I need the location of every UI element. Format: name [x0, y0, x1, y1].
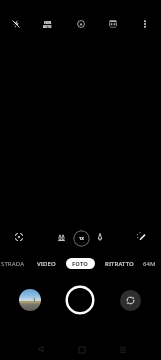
button[interactable]: Recents: [111, 338, 135, 360]
staticText: 1X: [79, 236, 84, 241]
button[interactable]: VIDEO: [33, 258, 59, 269]
button[interactable]: Flash off: [3, 11, 29, 37]
staticText: FOTO: [72, 260, 89, 268]
button[interactable]: Motion photo: [68, 11, 94, 37]
button[interactable]: RITRATTO: [103, 258, 135, 269]
button[interactable]: Home: [70, 338, 94, 360]
button[interactable]: Gallery: [19, 289, 41, 311]
button[interactable]: Filters: [129, 224, 153, 248]
staticText: HDR: [44, 20, 52, 25]
staticText: STRADA: [1, 260, 25, 268]
button[interactable]: Back: [29, 337, 53, 360]
button[interactable]: More settings: [132, 11, 158, 37]
button[interactable]: STRADA: [0, 258, 26, 269]
button[interactable]: 64M: [138, 258, 160, 269]
staticText: VIDEO: [37, 260, 56, 268]
button[interactable]: Switch camera: [120, 290, 141, 311]
button[interactable]: HDR: [33, 13, 61, 35]
button[interactable]: Shutter: [65, 285, 95, 315]
button[interactable]: FOTO: [66, 258, 95, 269]
button[interactable]: Beauty: [49, 225, 73, 249]
staticText: 64M: [143, 260, 156, 268]
staticText: AUTO: [43, 25, 52, 29]
button[interactable]: Focus: [7, 225, 31, 249]
staticText: RITRATTO: [105, 260, 134, 268]
button[interactable]: Tone: [88, 225, 112, 249]
button[interactable]: Scene detection: [100, 11, 126, 37]
button[interactable]: 1X: [73, 230, 90, 247]
